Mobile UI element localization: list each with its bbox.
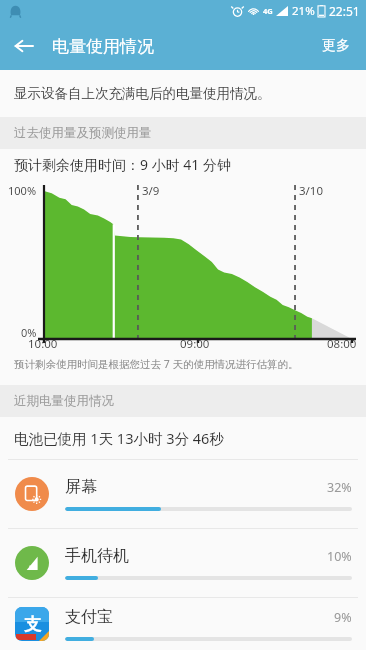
staticText: 支付宝 (65, 607, 334, 627)
staticText: 3/9 (142, 183, 160, 199)
staticText: 近期电量使用情况 (14, 393, 114, 409)
button[interactable]: 更多 (306, 22, 366, 70)
staticText: 电池已使用 1天 13小时 3分 46秒 (14, 428, 224, 448)
staticText: 支 (24, 614, 41, 635)
staticText: 3/10 (299, 183, 324, 199)
staticText: 屏幕 (65, 477, 327, 497)
staticText: 08:00 (327, 336, 357, 352)
staticText: 09:00 (180, 336, 210, 352)
staticText: 10% (327, 548, 352, 565)
staticText: 更多 (322, 37, 350, 55)
staticText: 9% (334, 609, 352, 626)
button[interactable]: Back (0, 22, 48, 70)
staticText: 22:51 (329, 3, 360, 19)
staticText: 显示设备自上次充满电后的电量使用情况。 (14, 85, 271, 102)
staticText: 手机待机 (65, 546, 327, 566)
staticText: 过去使用量及预测使用量 (14, 125, 152, 141)
staticText: 电量使用情况 (52, 36, 154, 57)
staticText: 32% (327, 479, 352, 496)
staticText: 4G (263, 6, 273, 16)
staticText: 预计剩余使用时间：9 小时 41 分钟 (14, 155, 231, 174)
staticText: 21% (292, 3, 315, 19)
staticText: 0% (21, 325, 37, 340)
button[interactable]: 屏幕 (0, 460, 366, 528)
button[interactable]: 手机待机 (0, 529, 366, 597)
button[interactable]: 支 (0, 598, 366, 650)
staticText: 预计剩余使用时间是根据您过去 7 天的使用情况进行估算的。 (14, 357, 299, 371)
staticText: 10:00 (28, 336, 58, 352)
staticText: 100% (8, 183, 37, 198)
